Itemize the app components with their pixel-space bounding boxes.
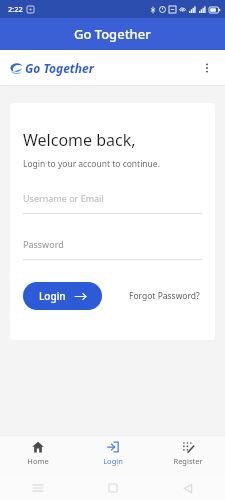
staticText: Forgot Password? <box>129 290 200 302</box>
button[interactable]: Register <box>150 436 225 476</box>
button[interactable]: Forgot Password? <box>127 286 202 306</box>
staticText: Go Together <box>74 25 151 43</box>
staticText: Welcome back, <box>23 129 136 151</box>
staticText: Login <box>103 456 123 466</box>
button[interactable]: Password <box>23 238 202 260</box>
button[interactable]: Login <box>75 436 150 476</box>
button[interactable]: Username or Email <box>23 192 202 214</box>
staticText: Login to your account to continue. <box>23 158 160 170</box>
staticText: Home <box>27 456 49 466</box>
staticText: 2:22 <box>8 4 23 14</box>
button[interactable]: Home <box>0 436 75 476</box>
staticText: Username or Email <box>23 192 104 204</box>
button[interactable]: More options <box>195 56 219 80</box>
staticText: Register <box>173 456 203 466</box>
staticText: Go Together <box>25 60 94 76</box>
button[interactable]: Login <box>23 282 102 310</box>
staticText: Login <box>39 289 66 303</box>
staticText: Password <box>23 238 64 250</box>
